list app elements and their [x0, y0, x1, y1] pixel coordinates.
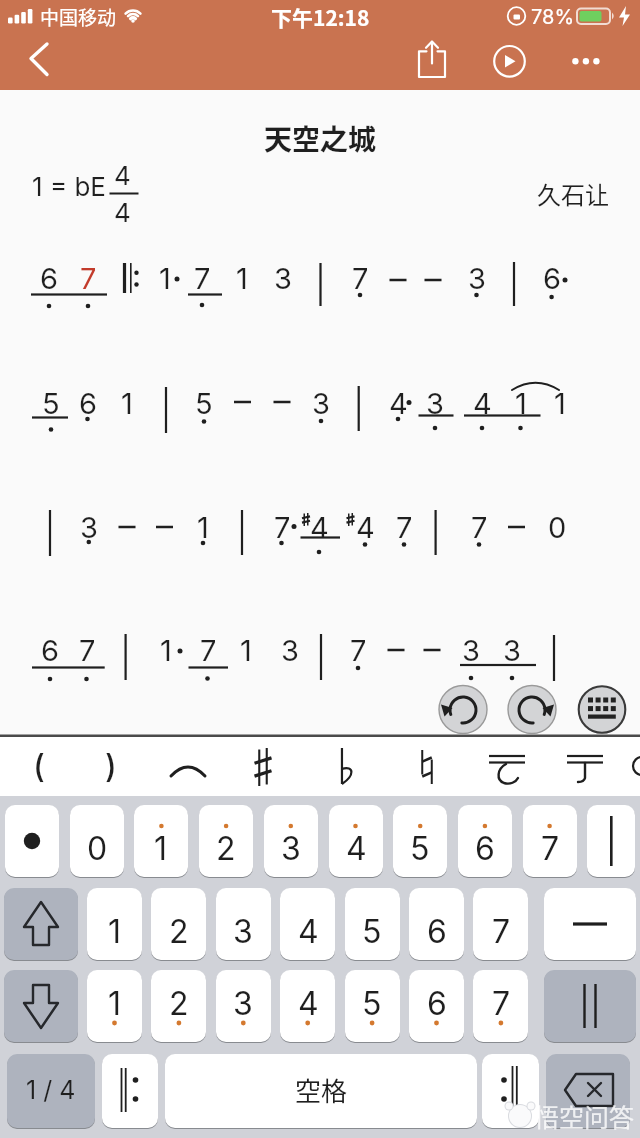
- button[interactable]: [345, 970, 400, 1042]
- button[interactable]: [151, 970, 206, 1042]
- button[interactable]: [216, 970, 271, 1042]
- button[interactable]: [544, 970, 636, 1042]
- button[interactable]: [79, 739, 143, 794]
- button[interactable]: [508, 686, 556, 734]
- button[interactable]: [216, 888, 271, 960]
- staticText: 7: [80, 261, 97, 296]
- staticText: 6: [41, 633, 59, 668]
- button[interactable]: [408, 38, 456, 82]
- staticText: 1: [154, 829, 168, 868]
- staticText: 7: [541, 829, 560, 868]
- button[interactable]: [7, 739, 71, 794]
- button[interactable]: [523, 805, 577, 877]
- staticText: 1: [108, 912, 122, 951]
- staticText: 4: [473, 386, 492, 421]
- staticText: 7: [274, 510, 291, 545]
- button[interactable]: [4, 970, 78, 1042]
- staticText: 4: [356, 510, 375, 545]
- staticText: 78%: [531, 5, 575, 29]
- staticText: 0: [548, 510, 567, 545]
- button[interactable]: [87, 888, 142, 960]
- staticText: 7: [79, 633, 96, 668]
- button[interactable]: [409, 888, 464, 960]
- staticText: 2: [169, 984, 189, 1023]
- button[interactable]: [16, 38, 64, 82]
- button[interactable]: [70, 805, 124, 877]
- staticText: 5: [410, 829, 430, 868]
- button[interactable]: [280, 888, 335, 960]
- staticText: 7: [352, 261, 369, 296]
- staticText: 3: [468, 261, 486, 296]
- button[interactable]: [156, 739, 220, 794]
- button[interactable]: [409, 970, 464, 1042]
- button[interactable]: [199, 805, 253, 877]
- button[interactable]: [486, 38, 534, 82]
- button[interactable]: [315, 739, 379, 794]
- button[interactable]: [329, 805, 383, 877]
- staticText: 3: [233, 912, 253, 951]
- button[interactable]: [473, 888, 528, 960]
- staticText: 6: [427, 984, 447, 1023]
- button[interactable]: [264, 805, 318, 877]
- button[interactable]: [393, 805, 447, 877]
- staticText: 5: [195, 386, 213, 421]
- button[interactable]: [5, 805, 59, 877]
- button[interactable]: [7, 1054, 95, 1128]
- staticText: 1 / 4: [26, 1075, 76, 1105]
- staticText: 1: [554, 386, 566, 421]
- staticText: 3: [312, 386, 330, 421]
- staticText: 4: [389, 386, 408, 421]
- staticText: 7: [194, 261, 211, 296]
- button[interactable]: [544, 888, 636, 960]
- button[interactable]: [546, 1054, 630, 1128]
- staticText: 下午12:18: [271, 2, 370, 32]
- staticText: ): [105, 747, 117, 786]
- staticText: 2: [169, 912, 189, 951]
- staticText: 3: [274, 261, 292, 296]
- staticText: 1: [197, 510, 209, 545]
- button[interactable]: [553, 739, 617, 794]
- button[interactable]: [578, 686, 626, 734]
- staticText: 6: [427, 912, 447, 951]
- staticText: 1: [160, 633, 172, 668]
- staticText: 1: [108, 984, 122, 1023]
- button[interactable]: [134, 805, 188, 877]
- button[interactable]: [231, 739, 295, 794]
- staticText: 中国移动: [40, 3, 117, 31]
- button[interactable]: [458, 805, 512, 877]
- staticText: 1: [240, 633, 252, 668]
- staticText: 5: [362, 984, 382, 1023]
- staticText: 7: [396, 510, 413, 545]
- button[interactable]: [87, 970, 142, 1042]
- staticText: 5: [362, 912, 382, 951]
- button[interactable]: [345, 888, 400, 960]
- button[interactable]: [102, 1054, 158, 1128]
- staticText: 6: [40, 261, 58, 296]
- button[interactable]: [482, 1054, 539, 1128]
- staticText: 5: [42, 386, 60, 421]
- staticText: 6: [79, 386, 97, 421]
- staticText: 久石让: [537, 176, 609, 211]
- button[interactable]: [562, 38, 610, 82]
- staticText: 4: [298, 912, 319, 951]
- staticText: 悟空问答: [534, 1098, 635, 1134]
- button[interactable]: [475, 739, 539, 794]
- staticText: 7: [350, 633, 367, 668]
- staticText: 1: [515, 386, 527, 421]
- staticText: 1 = bE: [32, 171, 106, 202]
- staticText: 4: [114, 160, 131, 191]
- button[interactable]: [165, 1054, 477, 1128]
- button[interactable]: [587, 805, 635, 877]
- staticText: 天空之城: [264, 118, 377, 159]
- staticText: 1: [236, 261, 248, 296]
- staticText: 3: [281, 633, 299, 668]
- button[interactable]: [151, 888, 206, 960]
- button[interactable]: [4, 888, 78, 960]
- staticText: 7: [492, 912, 511, 951]
- button[interactable]: [473, 970, 528, 1042]
- staticText: 6: [475, 829, 495, 868]
- button[interactable]: [439, 686, 487, 734]
- button[interactable]: [280, 970, 335, 1042]
- staticText: (: [33, 747, 45, 786]
- button[interactable]: [395, 739, 459, 794]
